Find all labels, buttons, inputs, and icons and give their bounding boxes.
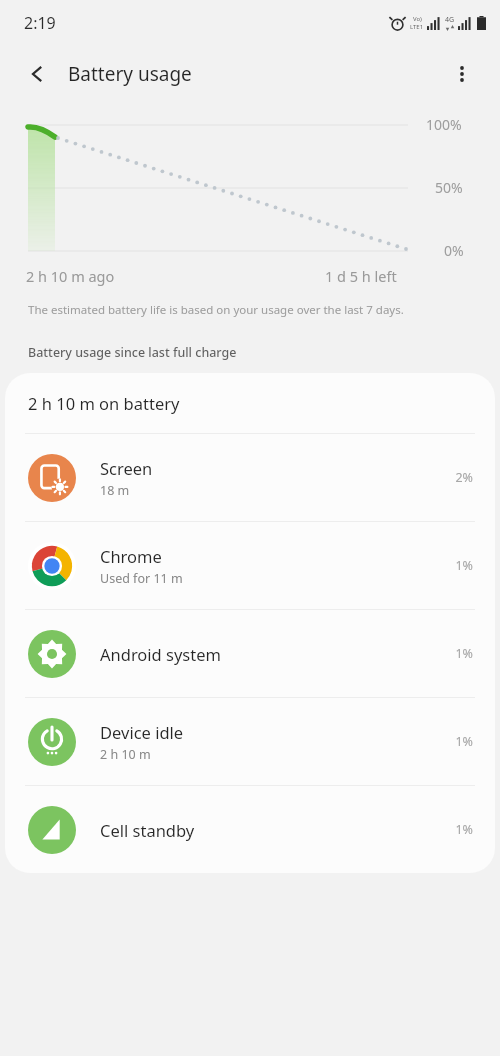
button[interactable]: Back — [14, 50, 62, 98]
staticText: Used for 11 m — [100, 570, 183, 587]
staticText: 0% — [444, 241, 464, 260]
staticText: 2 h 10 m ago — [26, 266, 115, 286]
staticText: Battery usage — [68, 61, 192, 87]
staticText: Battery usage since last full charge — [28, 344, 237, 361]
button[interactable]: Device idle — [5, 698, 495, 785]
button[interactable]: Chrome — [5, 522, 495, 609]
staticText: 100% — [426, 115, 462, 134]
staticText: 1% — [421, 821, 473, 838]
button[interactable]: More options — [438, 50, 486, 98]
button[interactable]: Android system — [5, 610, 495, 697]
staticText: 1% — [421, 645, 473, 662]
staticText: The estimated battery life is based on y… — [28, 302, 404, 318]
staticText: 18 m — [100, 482, 130, 499]
staticText: 4G — [445, 15, 455, 25]
staticText: 2 h 10 m on battery — [28, 392, 180, 414]
staticText: 2:19 — [24, 12, 56, 34]
staticText: 1% — [421, 733, 473, 750]
button[interactable]: Cell standby — [5, 786, 495, 873]
staticText: 2 h 10 m — [100, 746, 151, 763]
button[interactable]: Screen — [5, 434, 495, 521]
staticText: 1 d 5 h left — [325, 266, 397, 286]
staticText: Chrome — [100, 545, 162, 567]
staticText: LTE1 — [410, 23, 424, 31]
staticText: 50% — [435, 178, 463, 197]
staticText: 1% — [421, 557, 473, 574]
staticText: Cell standby — [100, 819, 195, 841]
staticText: Screen — [100, 457, 153, 479]
staticText: Android system — [100, 643, 221, 665]
staticText: Device idle — [100, 721, 184, 743]
staticText: Vo) — [413, 15, 422, 23]
staticText: 2% — [421, 469, 473, 486]
